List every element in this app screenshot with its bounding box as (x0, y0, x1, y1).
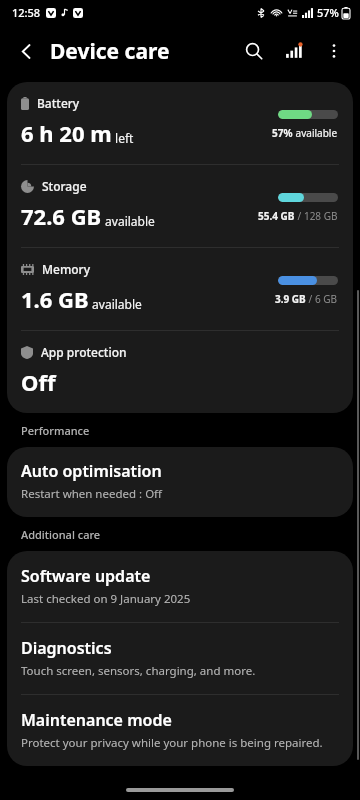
staticText: 57% (317, 5, 339, 20)
staticText: / 128 GB (295, 209, 338, 223)
staticText: Software update (21, 565, 151, 587)
button[interactable]: Memory (7, 248, 353, 330)
staticText: 3.9 GB (275, 292, 306, 306)
staticText: 12:58 (12, 5, 41, 20)
staticText: Diagnostics (21, 637, 112, 659)
staticText: Additional care (21, 527, 101, 542)
staticText: Off (21, 367, 56, 397)
staticText: 1.6 GB (21, 284, 89, 314)
button[interactable]: Storage (7, 165, 353, 247)
staticText: 72.6 GB (21, 201, 102, 231)
staticText: available (293, 126, 338, 140)
staticText: 6 h 20 m (21, 118, 112, 148)
button[interactable]: Search (234, 31, 274, 71)
button[interactable]: Maintenance mode (7, 695, 353, 766)
staticText: Protect your privacy while your phone is… (21, 735, 323, 751)
staticText: Touch screen, sensors, charging, and mor… (21, 663, 256, 679)
staticText: / 6 GB (306, 292, 338, 306)
staticText: Performance (21, 423, 90, 438)
staticText: Storage (42, 178, 87, 194)
button[interactable]: More options (314, 31, 354, 71)
button[interactable]: App protection (7, 331, 353, 413)
staticText: 55.4 GB (258, 209, 295, 223)
staticText: App protection (41, 344, 127, 360)
button[interactable]: Usage statistics (274, 31, 314, 71)
staticText: Memory (42, 261, 91, 277)
button[interactable]: Auto optimisation (7, 447, 353, 517)
button[interactable]: Battery (7, 82, 353, 164)
staticText: available (89, 296, 142, 312)
staticText: Maintenance mode (21, 709, 172, 731)
staticText: left (112, 130, 134, 146)
staticText: Auto optimisation (21, 460, 162, 482)
staticText: available (102, 213, 155, 229)
staticText: 57% (272, 126, 293, 140)
button[interactable]: Diagnostics (7, 623, 353, 694)
button[interactable]: Software update (7, 551, 353, 622)
button[interactable]: Back (6, 31, 46, 71)
staticText: Last checked on 9 January 2025 (21, 591, 191, 607)
staticText: Restart when needed : Off (21, 486, 163, 502)
staticText: Battery (37, 95, 80, 111)
staticText: Device care (50, 37, 170, 66)
